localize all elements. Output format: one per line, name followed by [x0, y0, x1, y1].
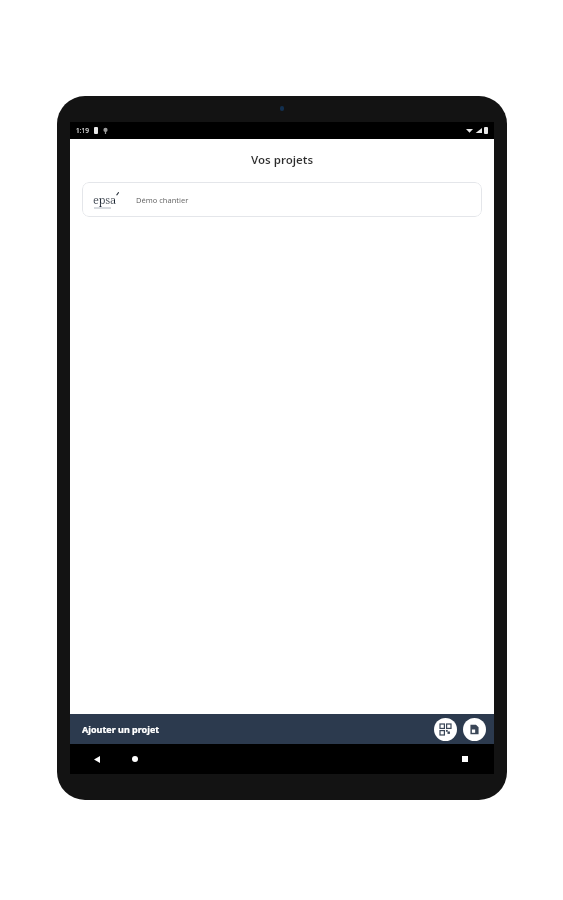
button[interactable]: Recent apps — [458, 752, 472, 766]
staticText: Vos projets — [70, 152, 494, 168]
staticText: Ajouter un projet — [82, 723, 160, 735]
staticText: 1:19 — [76, 126, 89, 135]
staticText: Démo chantier — [136, 195, 189, 205]
button[interactable]: Scanner un QR code — [434, 718, 457, 741]
button[interactable]: Créer un document — [463, 718, 486, 741]
staticText: epsa — [93, 192, 116, 207]
button[interactable]: Back — [90, 752, 104, 766]
button[interactable]: Home — [128, 752, 142, 766]
button[interactable]: epsa — [82, 182, 482, 217]
